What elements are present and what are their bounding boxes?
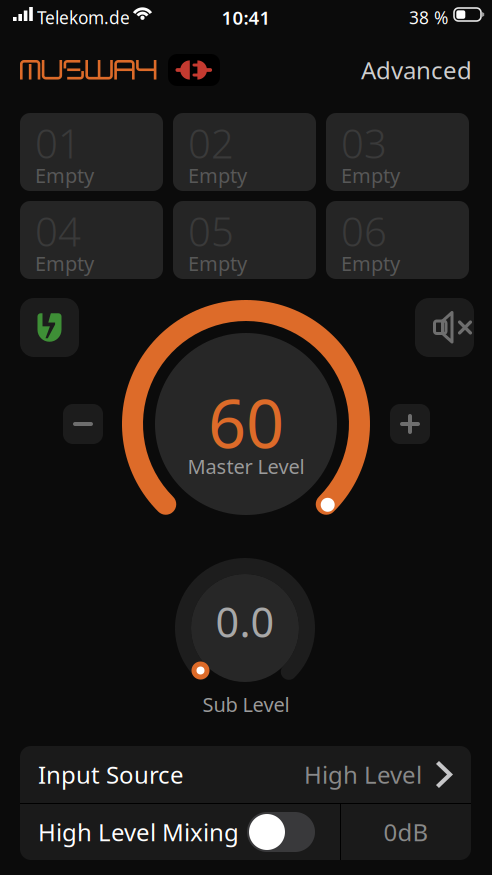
button[interactable]: Power xyxy=(20,298,79,357)
staticText: 05 xyxy=(188,204,234,258)
staticText: Empty xyxy=(341,162,400,189)
staticText: Sub Level xyxy=(202,691,289,718)
staticText: 02 xyxy=(188,116,234,170)
staticText: Telekom.de xyxy=(37,6,130,29)
button[interactable]: 05 xyxy=(173,201,316,279)
staticText: Master Level xyxy=(187,453,304,480)
button[interactable]: Decrease master level xyxy=(63,404,103,444)
button[interactable]: 06 xyxy=(326,201,469,279)
staticText: 01 xyxy=(35,116,81,170)
staticText: 60 xyxy=(208,378,284,466)
button[interactable]: 03 xyxy=(326,113,469,191)
button[interactable]: High Level Mixing xyxy=(247,812,315,852)
staticText: Empty xyxy=(35,162,94,189)
staticText: Empty xyxy=(35,250,94,277)
staticText: High Level xyxy=(304,759,422,790)
button[interactable]: Mute xyxy=(415,298,474,357)
staticText: 04 xyxy=(35,204,81,258)
staticText: 06 xyxy=(341,204,387,258)
staticText: 03 xyxy=(341,116,387,170)
button[interactable]: Advanced xyxy=(342,52,472,88)
button[interactable]: 01 xyxy=(20,113,163,191)
staticText: Advanced xyxy=(361,54,472,86)
button[interactable]: 02 xyxy=(173,113,316,191)
staticText: Empty xyxy=(341,250,400,277)
staticText: 10:41 xyxy=(221,5,270,30)
staticText: Empty xyxy=(188,162,247,189)
staticText: High Level Mixing xyxy=(38,816,239,848)
staticText: Input Source xyxy=(38,759,184,790)
staticText: Empty xyxy=(188,250,247,277)
staticText: 38 % xyxy=(409,6,448,29)
staticText: 0.0 xyxy=(215,594,274,649)
staticText: 0dB xyxy=(383,816,428,848)
button[interactable]: 04 xyxy=(20,201,163,279)
button[interactable]: Increase master level xyxy=(390,404,430,444)
button[interactable]: Input Source xyxy=(20,746,471,803)
